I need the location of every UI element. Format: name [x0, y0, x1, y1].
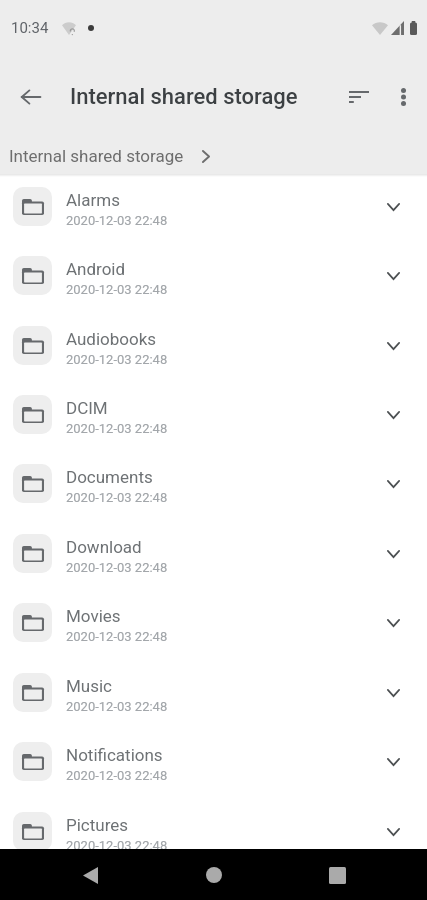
- staticText: 10:34: [11, 19, 49, 37]
- button[interactable]: Expand: [369, 808, 417, 856]
- staticText: Documents: [66, 467, 153, 487]
- staticText: Download: [66, 537, 142, 557]
- button[interactable]: Expand: [369, 599, 417, 647]
- staticText: Android: [66, 259, 126, 279]
- button[interactable]: Expand: [369, 252, 417, 300]
- button[interactable]: Audiobooks: [0, 311, 427, 380]
- button[interactable]: More options: [379, 73, 427, 121]
- button[interactable]: Home: [190, 851, 238, 899]
- button[interactable]: Documents: [0, 449, 427, 518]
- button[interactable]: Expand: [369, 183, 417, 231]
- button[interactable]: Sort: [335, 73, 383, 121]
- staticText: 2020-12-03 22:48: [66, 560, 168, 575]
- staticText: DCIM: [66, 398, 108, 418]
- button[interactable]: Alarms: [0, 172, 427, 241]
- button[interactable]: Music: [0, 658, 427, 727]
- staticText: Internal shared storage: [70, 84, 298, 110]
- staticText: Audiobooks: [66, 329, 157, 349]
- button[interactable]: Download: [0, 519, 427, 588]
- button[interactable]: Expand: [369, 738, 417, 786]
- button[interactable]: Expand: [369, 460, 417, 508]
- button[interactable]: Expand: [369, 530, 417, 578]
- button[interactable]: Podcasts: [0, 866, 427, 900]
- button[interactable]: Pictures: [0, 797, 427, 866]
- button[interactable]: Expand: [369, 391, 417, 439]
- button[interactable]: Expand: [369, 322, 417, 370]
- staticText: 2020-12-03 22:48: [66, 282, 168, 297]
- button[interactable]: Back: [66, 851, 114, 899]
- staticText: Music: [66, 676, 113, 696]
- staticText: 2020-12-03 22:48: [66, 213, 168, 228]
- staticText: Internal shared storage: [9, 146, 184, 166]
- staticText: Notifications: [66, 745, 163, 765]
- button[interactable]: Navigate up: [7, 73, 55, 121]
- staticText: 2020-12-03 22:48: [66, 421, 168, 436]
- staticText: 2020-12-03 22:48: [66, 629, 168, 644]
- button[interactable]: Movies: [0, 588, 427, 657]
- button[interactable]: Internal shared storage: [0, 140, 214, 172]
- staticText: Alarms: [66, 190, 120, 210]
- button[interactable]: Android: [0, 241, 427, 310]
- staticText: 2020-12-03 22:48: [66, 768, 168, 783]
- button[interactable]: DCIM: [0, 380, 427, 449]
- button[interactable]: Expand: [369, 669, 417, 717]
- staticText: 2020-12-03 22:48: [66, 490, 168, 505]
- button[interactable]: Notifications: [0, 727, 427, 796]
- staticText: 2020-12-03 22:48: [66, 352, 168, 367]
- staticText: Movies: [66, 606, 121, 626]
- staticText: 2020-12-03 22:48: [66, 699, 168, 714]
- staticText: Pictures: [66, 815, 129, 835]
- button[interactable]: Recents: [313, 851, 361, 899]
- staticText: 2020-12-03 22:48: [66, 838, 168, 853]
